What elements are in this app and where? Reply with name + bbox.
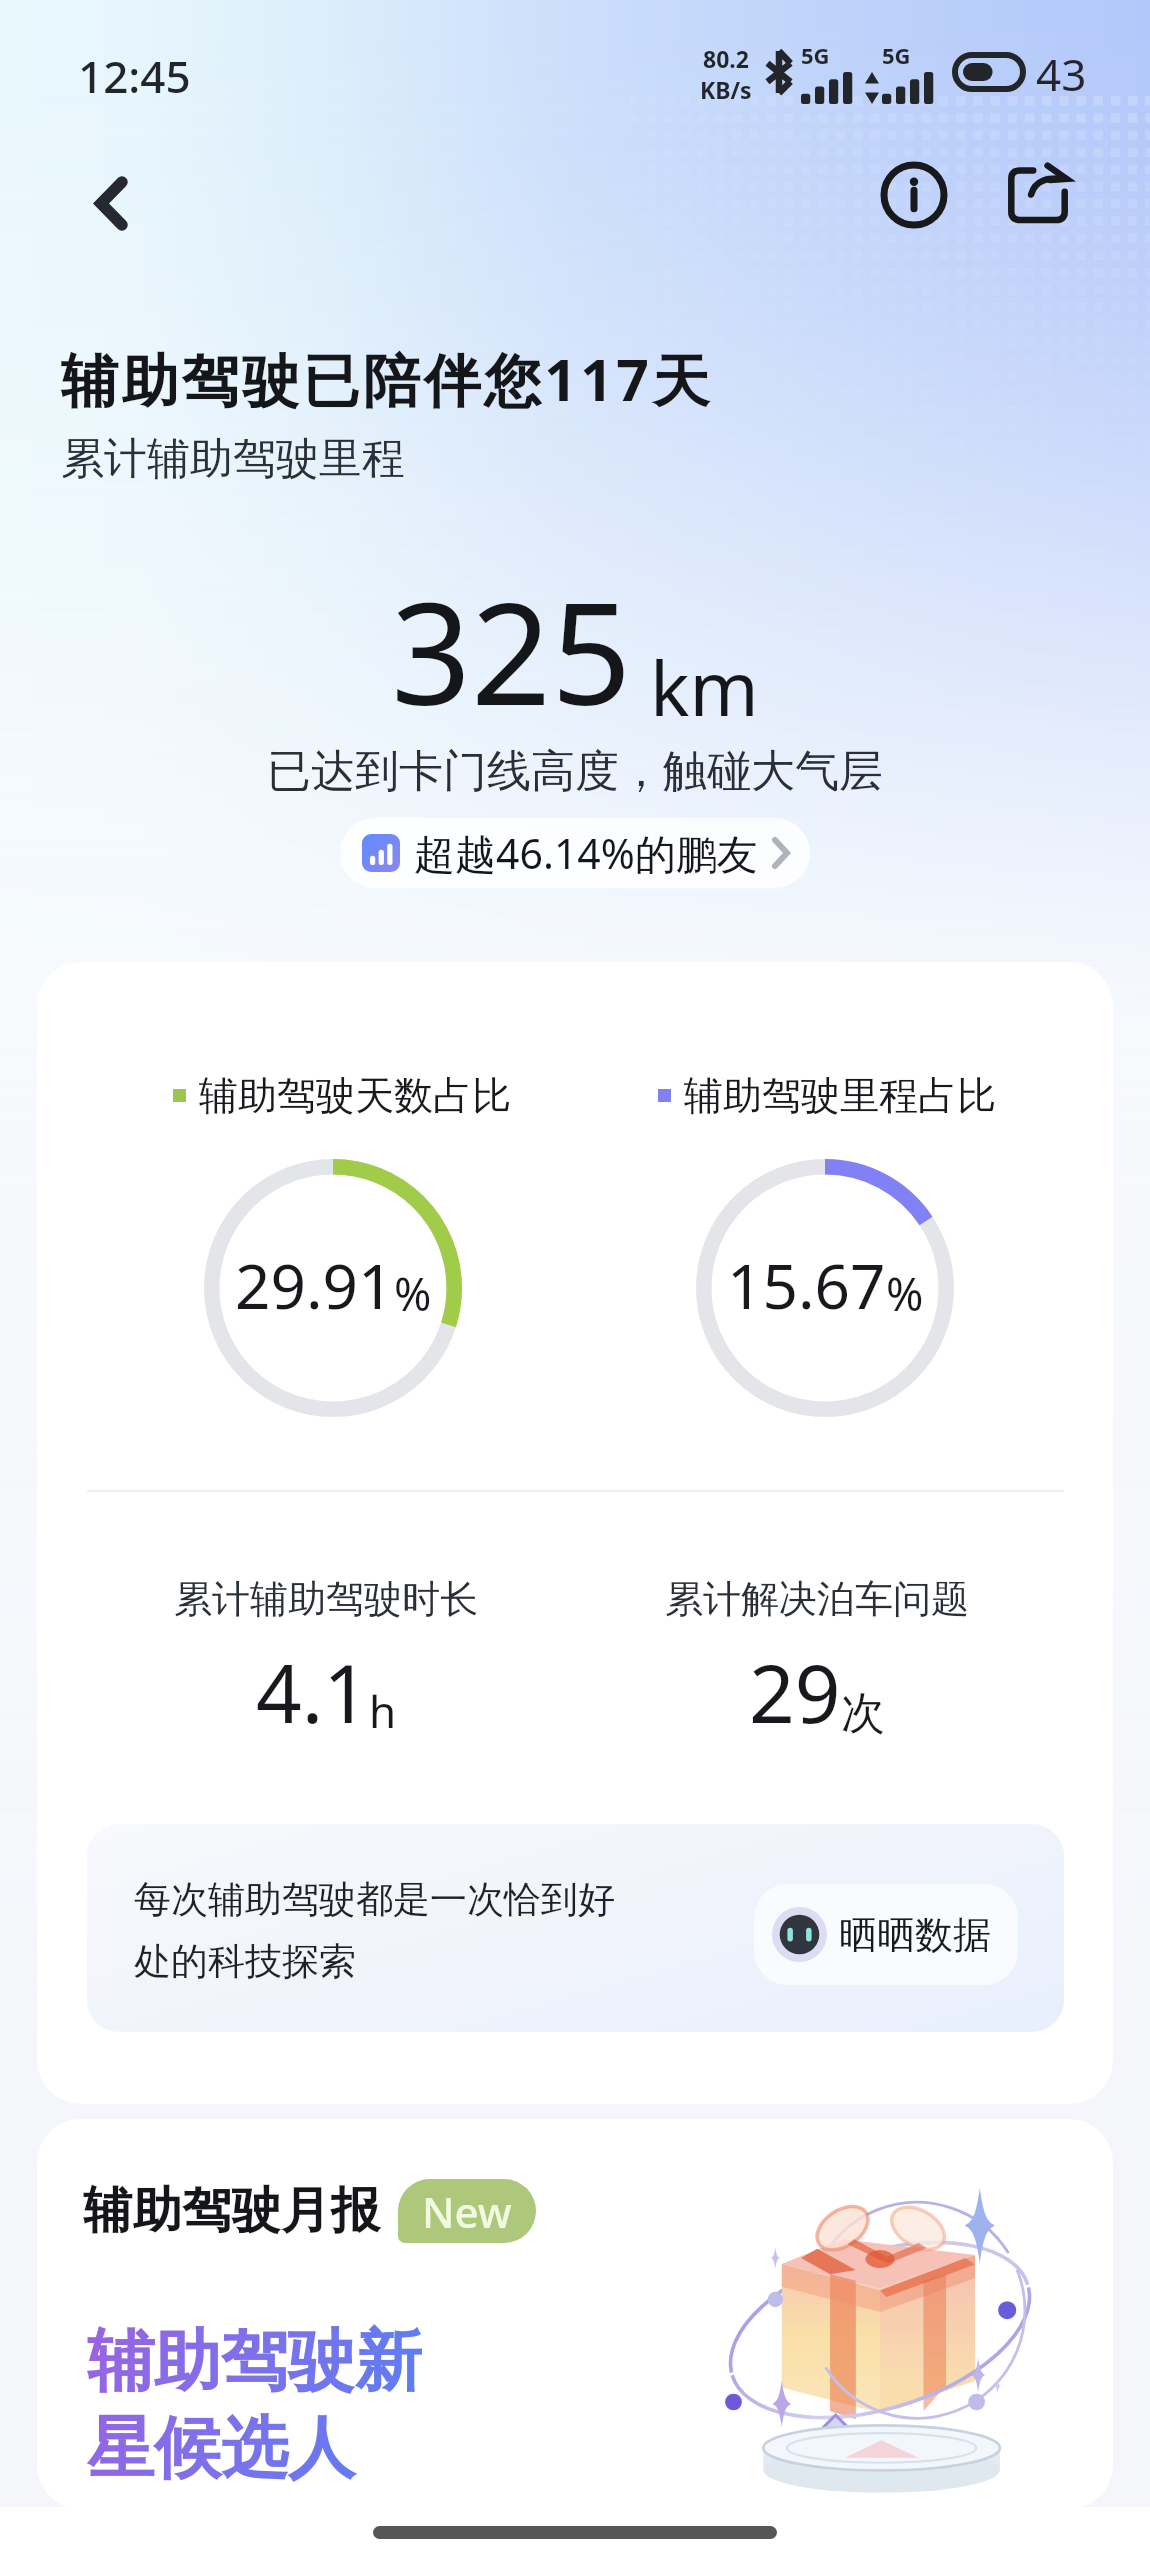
staticText: 已达到卡门线高度，触碰大气层 [0, 744, 1150, 799]
staticText: 80.2 [703, 43, 749, 74]
staticText: 超越46.14%的鹏友 [414, 825, 758, 881]
staticText: h [369, 1681, 397, 1741]
staticText: 15.67 [727, 1243, 886, 1327]
staticText: 5G [882, 40, 911, 70]
staticText: 5G [801, 40, 830, 70]
staticText: 累计解决泊车问题 [665, 1575, 969, 1623]
staticText: 辅助驾驶新 星候选人 [87, 2319, 422, 2491]
staticText: 晒晒数据 [839, 1911, 991, 1959]
staticText: New [422, 2183, 512, 2240]
staticText: % [394, 1263, 432, 1324]
staticText: 累计辅助驾驶里程 [61, 432, 405, 486]
staticText: 4.1 [256, 1637, 369, 1746]
staticText: 每次辅助驾驶都是一次恰到好 [134, 1876, 615, 1923]
button[interactable]: 晒晒数据 [754, 1884, 1018, 1985]
button[interactable]: Back [63, 155, 159, 251]
staticText: 次 [841, 1686, 885, 1741]
staticText: 12:45 [78, 46, 191, 106]
staticText: 29.91 [235, 1243, 394, 1327]
button[interactable]: 超越46.14%的鹏友 [340, 818, 810, 888]
staticText: km [650, 637, 759, 738]
staticText: 累计辅助驾驶时长 [174, 1575, 478, 1623]
staticText: 29 [749, 1637, 841, 1746]
staticText: KB/s [700, 74, 752, 105]
staticText: 43 [1036, 44, 1087, 104]
button[interactable]: 辅助驾驶月报 [37, 2119, 1113, 2509]
staticText: 处的科技探索 [134, 1938, 356, 1985]
staticText: % [886, 1263, 924, 1324]
staticText: 辅助驾驶月报 [83, 2180, 380, 2242]
button[interactable]: Info [862, 143, 966, 247]
button[interactable]: Share [986, 142, 1090, 246]
staticText: 辅助驾驶里程占比 [684, 1071, 996, 1120]
staticText: 辅助驾驶天数占比 [199, 1071, 511, 1120]
staticText: 325 [391, 555, 632, 746]
staticText: 辅助驾驶已陪伴您117天 [61, 340, 713, 418]
